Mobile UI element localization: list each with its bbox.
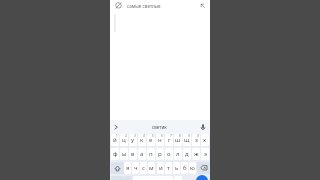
button[interactable]: [196, 175, 208, 180]
button[interactable]: [111, 162, 124, 174]
staticText: ж: [194, 150, 199, 158]
button[interactable]: ю: [189, 162, 196, 174]
button[interactable]: м: [148, 162, 155, 174]
staticText: ы: [122, 150, 127, 158]
button[interactable]: х: [201, 134, 209, 146]
button[interactable]: самые светлые: [110, 0, 210, 11]
staticText: 3: [134, 134, 136, 138]
button[interactable]: б: [181, 162, 188, 174]
button[interactable]: [113, 124, 119, 130]
staticText: ш: [175, 136, 181, 144]
staticText: т: [167, 164, 170, 172]
staticText: с: [142, 164, 145, 172]
button[interactable]: а: [138, 148, 146, 160]
button[interactable]: п: [147, 148, 155, 160]
staticText: 0: [197, 134, 199, 138]
button[interactable]: з: [192, 134, 200, 146]
staticText: ю: [190, 164, 195, 172]
staticText: х: [203, 136, 207, 144]
staticText: и: [159, 164, 163, 172]
button[interactable]: о: [165, 148, 173, 160]
button[interactable]: р: [156, 148, 164, 160]
button[interactable]: и: [157, 162, 164, 174]
staticText: е: [149, 136, 153, 144]
staticText: 8: [179, 134, 181, 138]
button[interactable]: ш: [174, 134, 182, 146]
button[interactable]: д: [183, 148, 191, 160]
staticText: ф: [113, 150, 118, 158]
button[interactable]: к: [138, 134, 146, 146]
button[interactable]: ц: [120, 134, 128, 146]
staticText: 2: [125, 134, 127, 138]
staticText: ь: [175, 164, 179, 172]
staticText: 6: [161, 134, 163, 138]
button[interactable]: щ: [183, 134, 191, 146]
staticText: о: [167, 150, 171, 158]
button[interactable]: л: [174, 148, 182, 160]
button[interactable]: т: [165, 162, 172, 174]
staticText: ч: [134, 164, 138, 172]
button[interactable]: в: [129, 148, 137, 160]
staticText: в: [131, 150, 135, 158]
staticText: л: [176, 150, 180, 158]
staticText: г: [168, 136, 171, 144]
button[interactable]: г: [165, 134, 173, 146]
staticText: д: [185, 150, 189, 158]
staticText: самые светлые: [127, 3, 161, 9]
button[interactable]: ы: [120, 148, 128, 160]
button[interactable]: й: [111, 134, 119, 146]
button[interactable]: светик: [152, 124, 167, 130]
staticText: к: [140, 136, 144, 144]
button[interactable]: ф: [111, 148, 119, 160]
button[interactable]: с: [140, 162, 147, 174]
staticText: 9: [188, 134, 190, 138]
button[interactable]: [197, 162, 210, 174]
staticText: з: [195, 136, 198, 144]
staticText: ц: [122, 136, 126, 144]
button[interactable]: н: [156, 134, 164, 146]
staticText: б: [183, 164, 187, 172]
button[interactable]: у: [129, 134, 137, 146]
staticText: 5: [152, 134, 154, 138]
button[interactable]: э: [201, 148, 209, 160]
staticText: щ: [184, 136, 190, 144]
staticText: р: [158, 150, 162, 158]
staticText: н: [158, 136, 162, 144]
staticText: 7: [170, 134, 172, 138]
button[interactable]: ь: [173, 162, 180, 174]
staticText: светик: [152, 124, 167, 130]
staticText: п: [149, 150, 153, 158]
staticText: я: [126, 164, 130, 172]
staticText: 1: [116, 134, 118, 138]
staticText: а: [140, 150, 144, 158]
button[interactable]: ж: [192, 148, 200, 160]
staticText: 4: [143, 134, 145, 138]
button[interactable]: [200, 124, 206, 130]
staticText: й: [113, 136, 117, 144]
staticText: у: [131, 136, 135, 144]
button[interactable]: я: [124, 162, 131, 174]
staticText: м: [149, 164, 154, 172]
button[interactable]: ч: [132, 162, 139, 174]
staticText: э: [204, 150, 207, 158]
button[interactable]: е: [147, 134, 155, 146]
